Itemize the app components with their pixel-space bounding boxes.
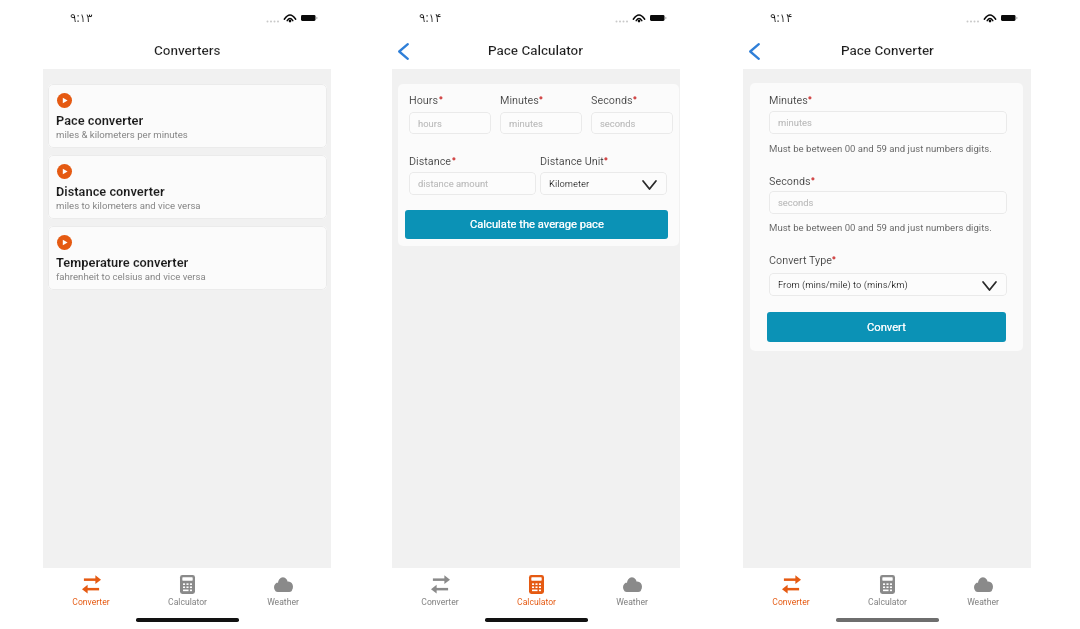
staticText: From (mins/mile) to (mins/km)	[778, 279, 908, 290]
button[interactable]: minutes	[769, 111, 1007, 134]
staticText: miles & kilometers per minutes	[56, 129, 188, 140]
staticText: minutes	[509, 118, 543, 129]
staticText: Minutes	[769, 94, 808, 107]
staticText: Calculator	[517, 597, 556, 607]
button[interactable]: Weather	[235, 573, 331, 609]
staticText: ۹:۱۴	[770, 11, 793, 25]
button[interactable]: distance amount	[409, 172, 536, 195]
staticText: Hours	[409, 94, 439, 107]
button[interactable]: Weather	[935, 573, 1031, 609]
staticText: Distance Unit	[540, 155, 604, 168]
button[interactable]: Converter	[43, 573, 139, 609]
button[interactable]: Calculator	[139, 573, 235, 609]
button[interactable]: Calculator	[839, 573, 935, 609]
staticText: Weather	[967, 597, 999, 607]
staticText: Calculate the average pace	[470, 218, 604, 231]
button[interactable]: Converter	[392, 573, 488, 609]
staticText: Distance	[409, 155, 452, 168]
staticText: seconds	[600, 118, 636, 129]
button[interactable]: hours	[409, 112, 491, 134]
staticText: fahrenheit to celsius and vice versa	[56, 271, 206, 282]
button[interactable]: minutes	[500, 112, 582, 134]
button[interactable]: Temperature converter	[48, 226, 327, 290]
staticText: minutes	[778, 117, 812, 128]
button[interactable]: Back	[745, 42, 764, 61]
staticText: ۹:۱۳	[70, 11, 93, 25]
staticText: Convert	[867, 321, 906, 334]
staticText: Converter	[72, 597, 110, 607]
staticText: hours	[418, 118, 442, 129]
button[interactable]: seconds	[591, 112, 673, 134]
button[interactable]: Calculator	[488, 573, 584, 609]
staticText: Pace Converter	[841, 42, 934, 58]
staticText: Distance converter	[56, 184, 165, 199]
button[interactable]: Kilometer	[540, 172, 667, 195]
staticText: Seconds	[769, 175, 811, 188]
staticText: Pace Calculator	[488, 42, 584, 58]
button[interactable]: Converter	[743, 573, 839, 609]
staticText: Must be between 00 and 59 and just numbe…	[769, 143, 992, 154]
button[interactable]: Distance converter	[48, 155, 327, 219]
staticText: miles to kilometers and vice versa	[56, 200, 201, 211]
staticText: Seconds	[591, 94, 633, 107]
staticText: Convert Type	[769, 254, 832, 267]
staticText: Pace converter	[56, 113, 144, 128]
staticText: seconds	[778, 197, 814, 208]
staticText: distance amount	[418, 178, 489, 189]
staticText: Must be between 00 and 59 and just numbe…	[769, 222, 992, 233]
button[interactable]: Weather	[584, 573, 680, 609]
staticText: Calculator	[868, 597, 907, 607]
staticText: Converter	[421, 597, 459, 607]
button[interactable]: Convert	[767, 312, 1006, 342]
button[interactable]: From (mins/mile) to (mins/km)	[769, 273, 1007, 296]
button[interactable]: Calculate the average pace	[405, 210, 668, 239]
staticText: ۹:۱۴	[419, 11, 442, 25]
staticText: Weather	[267, 597, 299, 607]
staticText: Converters	[154, 42, 221, 58]
staticText: Temperature converter	[56, 255, 189, 270]
staticText: Weather	[616, 597, 648, 607]
button[interactable]: seconds	[769, 191, 1007, 214]
button[interactable]: Back	[394, 42, 413, 61]
staticText: Minutes	[500, 94, 539, 107]
staticText: Calculator	[168, 597, 207, 607]
button[interactable]: Pace converter	[48, 84, 327, 148]
staticText: Converter	[772, 597, 810, 607]
staticText: Kilometer	[549, 178, 590, 189]
